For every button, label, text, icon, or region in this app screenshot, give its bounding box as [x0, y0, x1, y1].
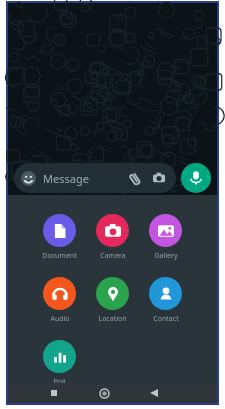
button[interactable]: Gallery [139, 214, 192, 261]
button[interactable]: Attach [125, 168, 145, 188]
staticText: Audio [50, 314, 70, 324]
button[interactable]: Document [33, 214, 86, 261]
button[interactable]: Camera [86, 214, 139, 261]
button[interactable]: Emoji [14, 163, 176, 193]
staticText: Poll [53, 377, 66, 387]
button[interactable]: Voice message [181, 163, 211, 193]
button[interactable]: Contact [139, 277, 192, 324]
staticText: Contact [153, 314, 179, 324]
staticText: Camera [100, 251, 126, 261]
staticText: Message [43, 171, 89, 186]
staticText: Location [98, 314, 127, 324]
other: Emoji [21, 171, 36, 186]
button[interactable]: Location [86, 277, 139, 324]
button[interactable]: Poll [33, 340, 86, 387]
button[interactable]: Recent apps [45, 384, 63, 402]
staticText: Document [42, 251, 77, 261]
staticText: Gallery [154, 251, 178, 261]
button[interactable]: Home [95, 384, 113, 402]
button[interactable]: Camera [149, 168, 169, 188]
button[interactable]: Audio [33, 277, 86, 324]
button[interactable]: Back [145, 384, 163, 402]
